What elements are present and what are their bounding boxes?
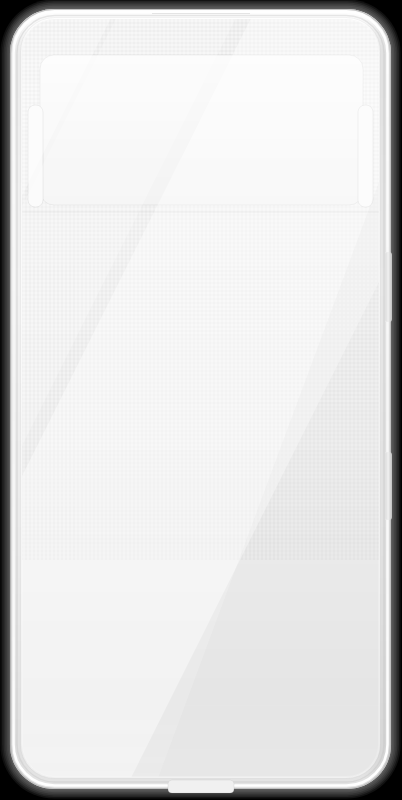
button[interactable]: Phone device mockup [0,0,402,800]
